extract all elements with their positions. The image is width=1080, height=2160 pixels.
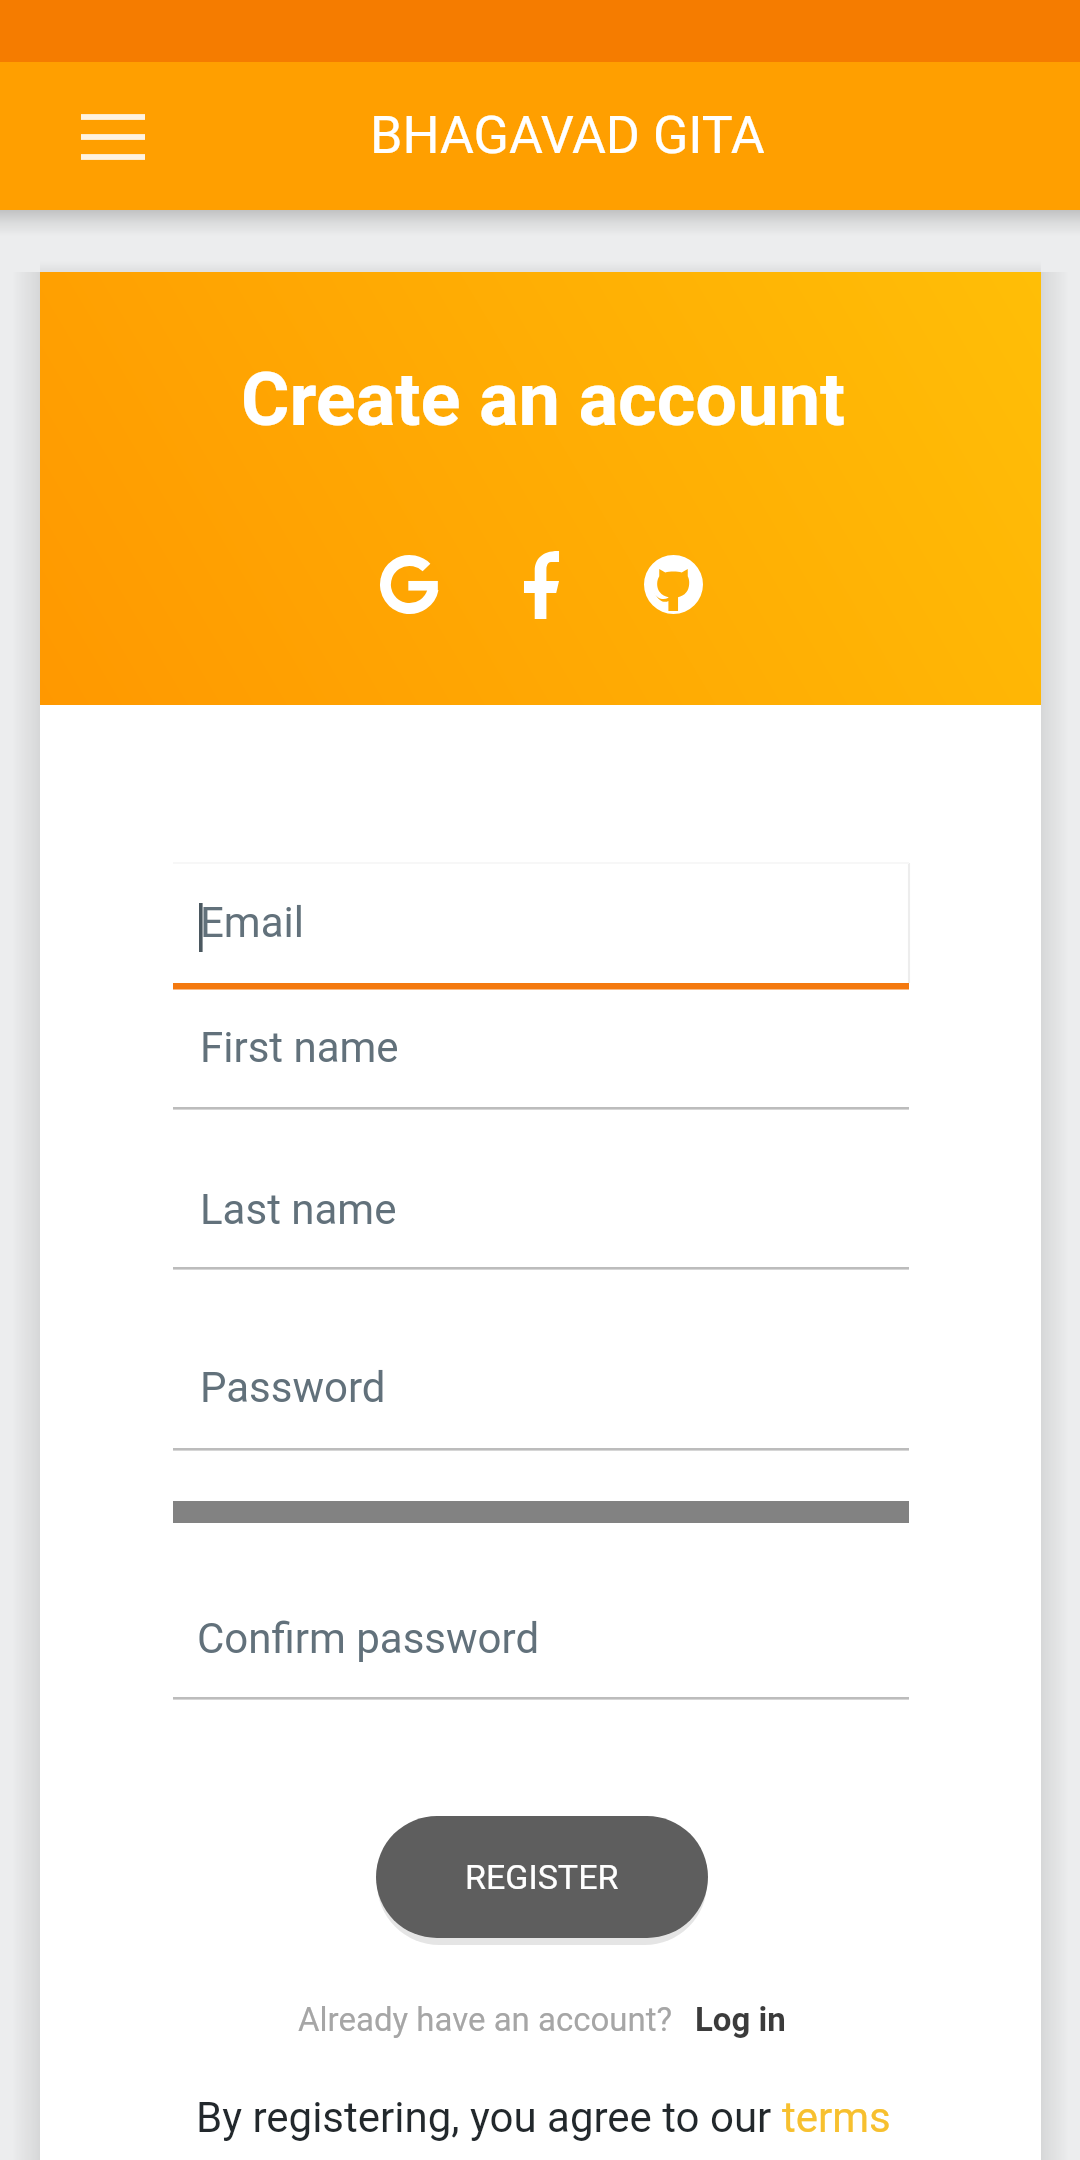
staticText: terms xyxy=(782,2093,891,2142)
button[interactable]: Sign up with Facebook xyxy=(509,555,568,614)
button[interactable]: Open navigation menu xyxy=(31,87,131,187)
staticText: Create an account xyxy=(241,356,846,443)
staticText: Last name xyxy=(200,1185,397,1234)
staticText: Email xyxy=(200,898,304,947)
button[interactable]: Password xyxy=(173,1329,909,1450)
button[interactable]: Email xyxy=(173,863,909,989)
staticText: Password xyxy=(200,1363,386,1412)
staticText: Confirm password xyxy=(197,1614,540,1663)
staticText: BHAGAVAD GITA xyxy=(370,105,765,166)
button[interactable]: Confirm password xyxy=(173,1577,909,1699)
button[interactable]: REGISTER xyxy=(376,1816,708,1938)
button[interactable]: First name xyxy=(173,989,909,1109)
staticText: Already have an account? xyxy=(298,2000,673,2039)
button[interactable]: Sign up with Google xyxy=(380,555,439,614)
button[interactable]: Log in xyxy=(695,2000,786,2039)
button[interactable]: Last name xyxy=(173,1149,909,1269)
staticText: Log in xyxy=(695,2000,786,2039)
staticText: First name xyxy=(200,1023,399,1072)
button[interactable]: terms xyxy=(782,2093,891,2142)
staticText: By registering, you agree to our xyxy=(196,2093,782,2142)
staticText: REGISTER xyxy=(465,1857,619,1897)
button[interactable]: Sign up with GitHub xyxy=(644,555,703,614)
